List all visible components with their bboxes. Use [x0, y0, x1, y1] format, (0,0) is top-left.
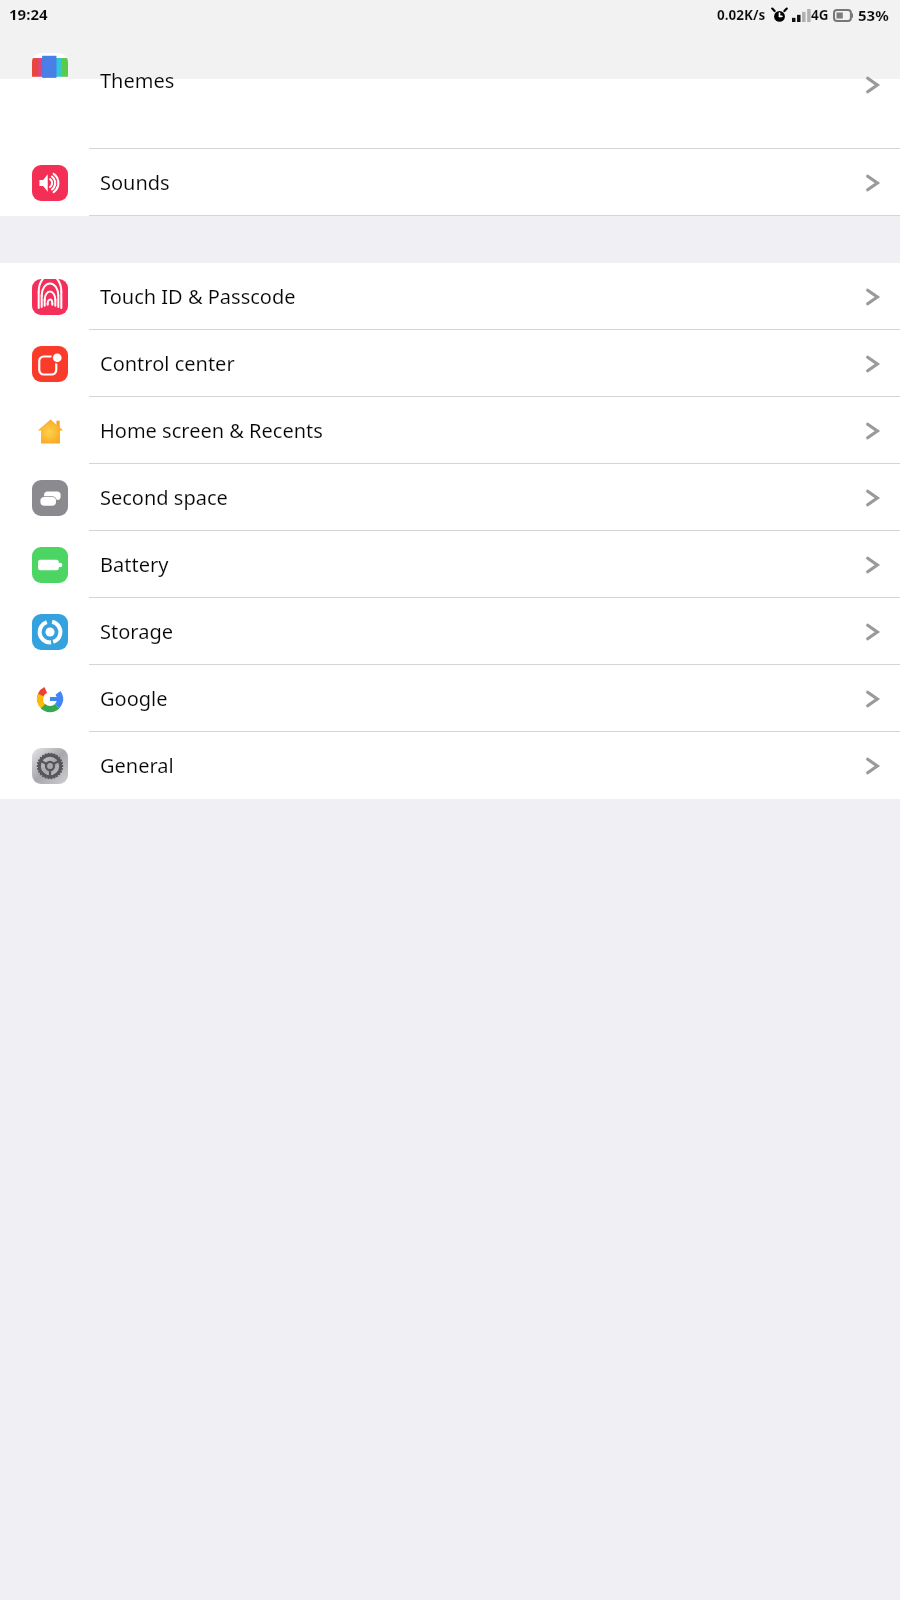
button[interactable]: Battery [0, 531, 900, 598]
staticText: 4G [811, 6, 829, 24]
staticText: Home screen & Recents [100, 417, 323, 444]
button[interactable]: Home screen & Recents [0, 397, 900, 464]
button[interactable]: Touch ID & Passcode [0, 263, 900, 330]
button[interactable]: Themes [0, 79, 900, 149]
staticText: Storage [100, 618, 173, 645]
staticText: 53% [858, 5, 889, 25]
staticText: Themes [100, 67, 175, 94]
button[interactable]: Storage [0, 598, 900, 665]
button[interactable]: Google [0, 665, 900, 732]
staticText: Google [100, 685, 168, 712]
staticText: Touch ID & Passcode [100, 283, 296, 310]
staticText: Second space [100, 484, 228, 511]
staticText: Sounds [100, 169, 170, 196]
button[interactable]: General [0, 732, 900, 799]
button[interactable]: Sounds [0, 149, 900, 216]
staticText: 0.02K/s [717, 6, 766, 24]
staticText: 19:24 [9, 4, 48, 24]
button[interactable]: Second space [0, 464, 900, 531]
staticText: Control center [100, 350, 235, 377]
staticText: Battery [100, 551, 169, 578]
staticText: General [100, 752, 174, 779]
button[interactable]: Control center [0, 330, 900, 397]
